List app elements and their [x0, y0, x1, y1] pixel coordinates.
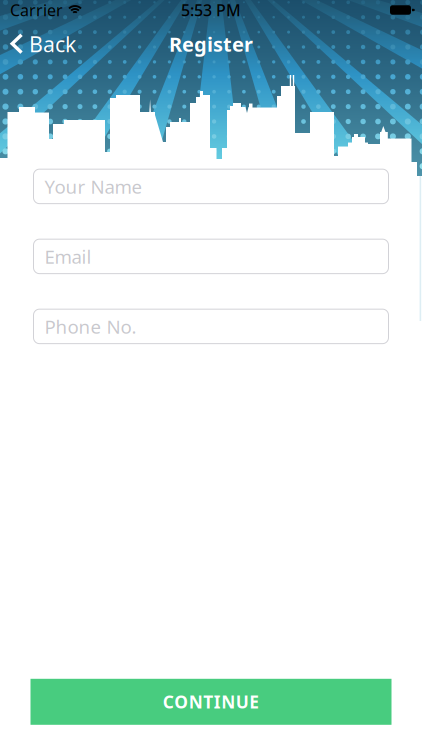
button[interactable]: CONTINUE [30, 679, 391, 725]
button[interactable]: Back [0, 30, 84, 58]
staticText: Phone No. [44, 314, 136, 339]
staticText: Back [29, 30, 76, 58]
staticText: CONTINUE [163, 690, 259, 713]
button[interactable]: Your Name [33, 169, 388, 204]
staticText: Register [169, 31, 253, 57]
button[interactable]: Phone No. [33, 309, 388, 344]
staticText: Your Name [44, 174, 142, 199]
staticText: Email [44, 244, 91, 269]
button[interactable]: Email [33, 239, 388, 274]
staticText: Carrier [10, 0, 63, 21]
staticText: 5:53 PM [181, 0, 241, 21]
